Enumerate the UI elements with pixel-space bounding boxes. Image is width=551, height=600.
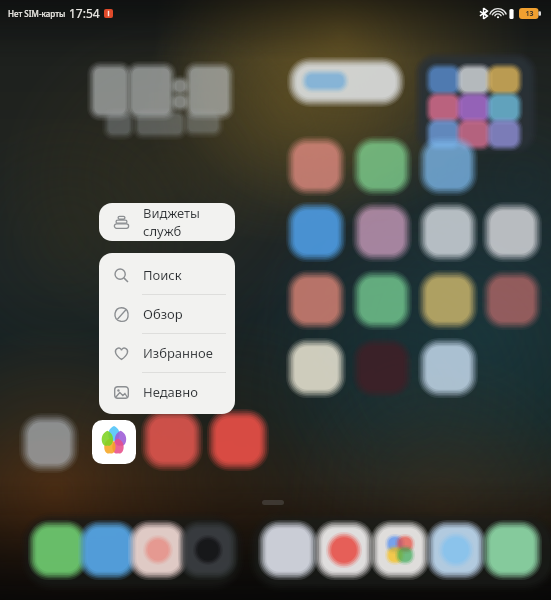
button[interactable]: Виджеты служб <box>99 203 235 241</box>
button[interactable]: Поиск <box>99 256 235 294</box>
button[interactable]: Галерея <box>92 420 136 464</box>
button[interactable]: Недавно <box>99 373 235 411</box>
staticText: Поиск <box>143 266 182 284</box>
staticText: Нет SIM-карты <box>8 8 66 19</box>
staticText: 13 <box>525 9 534 19</box>
button[interactable]: Обзор <box>99 295 235 333</box>
staticText: Виджеты служб <box>143 204 235 240</box>
staticText: Избранное <box>143 344 213 362</box>
staticText: 17:54 <box>69 5 100 21</box>
button[interactable]: Виджеты служб <box>99 203 235 241</box>
button[interactable]: Избранное <box>99 334 235 372</box>
staticText: Недавно <box>143 383 198 401</box>
staticText: Обзор <box>143 305 183 323</box>
